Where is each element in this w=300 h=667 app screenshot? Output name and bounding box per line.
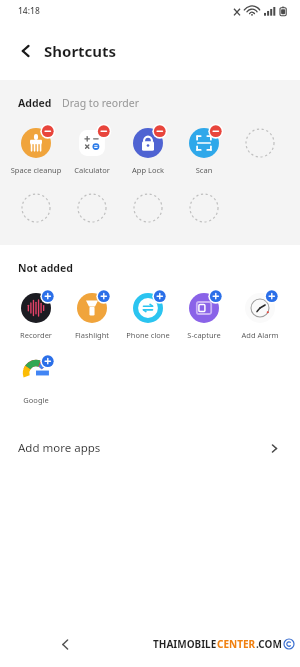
staticText: Shortcuts xyxy=(44,41,117,61)
staticText: Added xyxy=(18,96,52,110)
button[interactable]: Add more apps xyxy=(0,427,300,469)
button[interactable]: Space cleanup, remove xyxy=(8,124,64,175)
staticText: Google xyxy=(8,395,64,405)
button[interactable]: Calculator, remove xyxy=(64,124,120,175)
staticText: 14:18 xyxy=(18,5,40,17)
staticText: Scan xyxy=(176,165,232,175)
staticText: Recorder xyxy=(8,330,64,340)
staticText: S-capture xyxy=(176,330,232,340)
button[interactable]: Add Alarm, add xyxy=(232,289,288,340)
staticText: CENTER xyxy=(217,637,256,651)
button[interactable]: App Lock, remove xyxy=(120,124,176,175)
staticText: THAIMOBILE xyxy=(153,637,217,651)
staticText: App Lock xyxy=(120,165,176,175)
staticText: Space cleanup xyxy=(8,165,64,175)
staticText: Add more apps xyxy=(18,440,101,456)
button[interactable]: S-capture, add xyxy=(176,289,232,340)
staticText: Not added xyxy=(18,261,73,275)
staticText: Calculator xyxy=(64,165,120,175)
staticText: .COM xyxy=(256,637,282,651)
staticText: Flashlight xyxy=(64,330,120,340)
button[interactable]: Scan, remove xyxy=(176,124,232,175)
button[interactable]: Back xyxy=(12,37,40,65)
button[interactable]: Google, add xyxy=(8,354,64,405)
staticText: Drag to reorder xyxy=(62,96,139,110)
button[interactable]: Back xyxy=(52,631,78,657)
button[interactable]: Flashlight, add xyxy=(64,289,120,340)
staticText: Add Alarm xyxy=(232,330,288,340)
staticText: Phone clone xyxy=(120,330,176,340)
button[interactable]: Phone clone, add xyxy=(120,289,176,340)
button[interactable]: Recorder, add xyxy=(8,289,64,340)
